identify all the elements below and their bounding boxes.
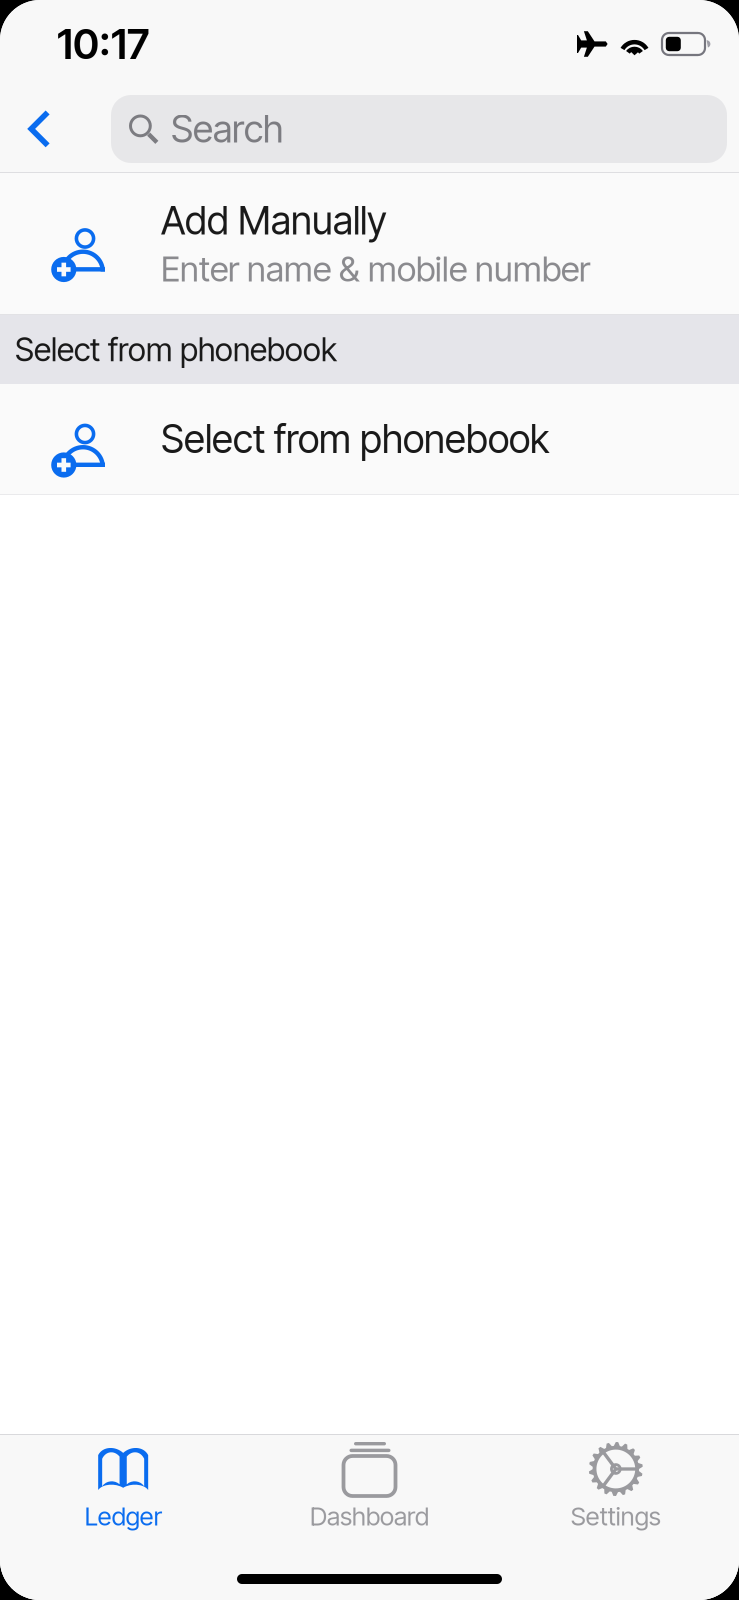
button[interactable]: Ledger bbox=[0, 1435, 246, 1541]
button[interactable]: Dashboard bbox=[246, 1435, 493, 1541]
staticText: Add Manually bbox=[161, 197, 387, 244]
staticText: Select from phonebook bbox=[161, 416, 549, 462]
button[interactable]: Back bbox=[0, 95, 111, 163]
staticText: Settings bbox=[571, 1501, 661, 1532]
staticText: Dashboard bbox=[310, 1501, 429, 1532]
staticText: Ledger bbox=[85, 1501, 162, 1532]
staticText: Select from phonebook bbox=[15, 330, 337, 369]
button[interactable]: Add Manually bbox=[0, 173, 739, 314]
staticText: 10:17 bbox=[57, 19, 149, 69]
button[interactable]: Settings bbox=[493, 1435, 739, 1541]
button[interactable]: Select from phonebook bbox=[0, 384, 739, 494]
button[interactable]: Search bbox=[111, 95, 727, 163]
staticText: Search bbox=[171, 106, 283, 152]
staticText: Enter name & mobile number bbox=[161, 248, 590, 290]
